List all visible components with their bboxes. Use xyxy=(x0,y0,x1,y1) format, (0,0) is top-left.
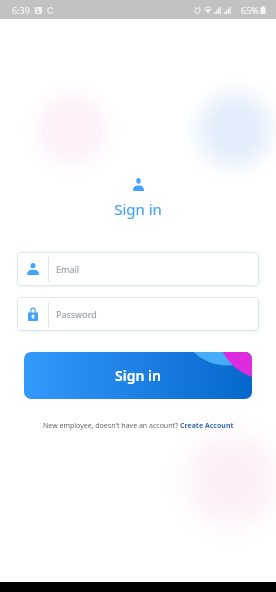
button[interactable]: Sign in xyxy=(24,352,252,399)
staticText: New employee, doesn't have an account? xyxy=(43,421,180,431)
staticText: Password xyxy=(56,308,97,320)
button[interactable]: Create Account xyxy=(180,421,234,431)
staticText: 65% xyxy=(241,4,259,16)
staticText: Email xyxy=(56,263,80,275)
staticText: Create Account xyxy=(180,421,234,431)
button[interactable]: Password xyxy=(17,297,259,331)
staticText: 6:39 xyxy=(12,4,30,16)
staticText: Sign in xyxy=(0,199,276,219)
staticText: Sign in xyxy=(115,366,161,385)
button[interactable]: Email xyxy=(17,252,259,286)
